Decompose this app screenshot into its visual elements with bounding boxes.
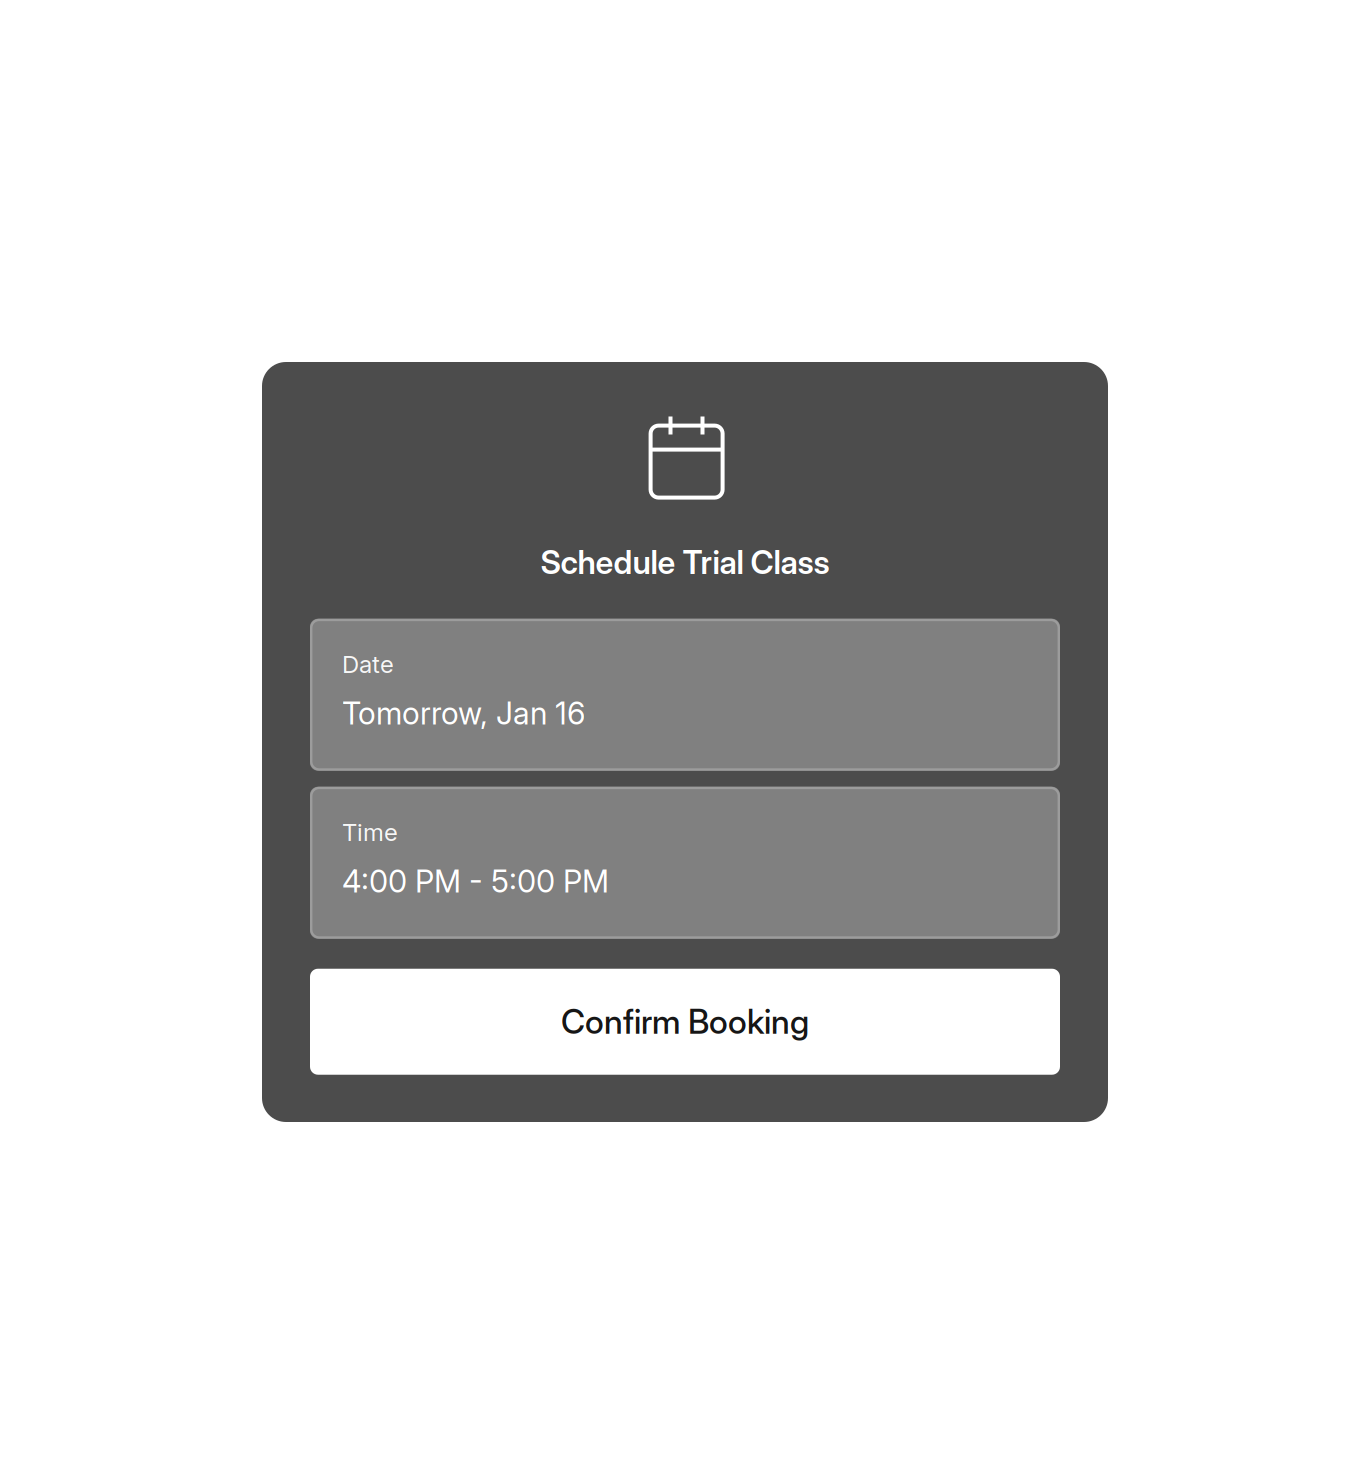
button[interactable]: Time xyxy=(310,787,1060,939)
staticText: 4:00 PM - 5:00 PM xyxy=(342,863,609,900)
staticText: Confirm Booking xyxy=(561,1002,809,1042)
staticText: Tomorrow, Jan 16 xyxy=(342,695,585,732)
button[interactable]: Confirm Booking xyxy=(310,969,1060,1075)
staticText: Time xyxy=(342,818,398,847)
button[interactable]: Date xyxy=(310,619,1060,771)
staticText: Date xyxy=(342,650,394,679)
staticText: Schedule Trial Class xyxy=(540,543,829,582)
